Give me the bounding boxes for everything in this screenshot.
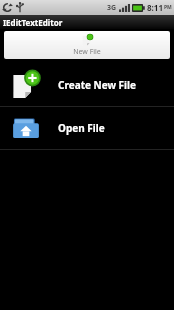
button[interactable]: New File	[4, 31, 170, 59]
button[interactable]: Open File folder	[0, 107, 174, 149]
staticText: Open File	[58, 121, 105, 135]
staticText: PM	[164, 4, 172, 11]
staticText: New File	[73, 47, 101, 57]
staticText: IEditTextEditor	[3, 17, 63, 28]
other: Open File folder	[12, 114, 40, 142]
button[interactable]: Create New File	[0, 64, 174, 106]
staticText: Create New File	[58, 78, 137, 92]
staticText: 3G	[107, 3, 117, 13]
staticText: 8:11	[147, 2, 163, 13]
